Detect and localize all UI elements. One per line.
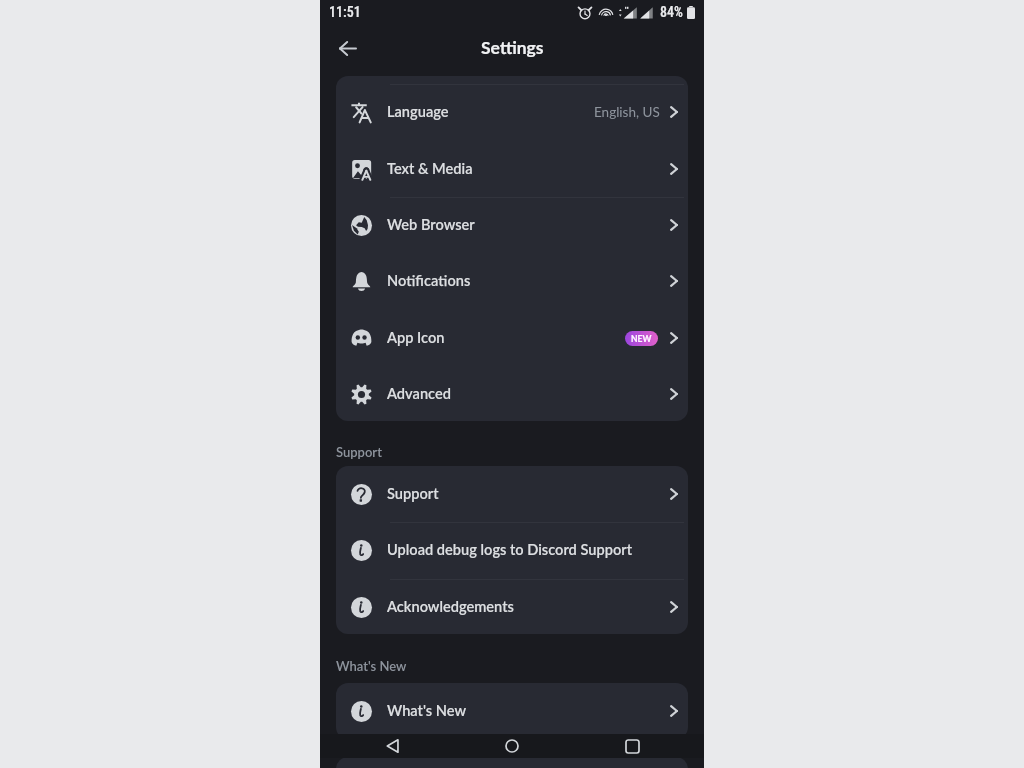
staticText: English, US — [594, 104, 660, 120]
button[interactable]: Back — [326, 27, 368, 69]
staticText: Advanced — [387, 385, 451, 403]
staticText: Support — [387, 485, 439, 503]
button[interactable]: Notifications — [336, 253, 688, 309]
button[interactable]: What's New — [336, 683, 688, 739]
button[interactable]: Home — [497, 734, 527, 758]
staticText: Notifications — [387, 272, 471, 290]
staticText: What's New — [336, 658, 407, 674]
staticText: What's New — [387, 702, 467, 720]
staticText: Acknowledgements — [387, 598, 514, 616]
staticText: Support — [336, 444, 382, 460]
staticText: Language — [387, 103, 449, 121]
button[interactable]: Recent apps — [617, 734, 647, 758]
staticText: App Icon — [387, 329, 445, 347]
staticText: Web Browser — [387, 216, 475, 234]
button[interactable]: Acknowledgements — [336, 579, 688, 634]
button[interactable]: Back — [377, 734, 407, 758]
button[interactable]: Language — [336, 84, 688, 140]
button[interactable]: App Icon — [336, 310, 688, 366]
staticText: Text & Media — [387, 160, 473, 178]
button[interactable]: Text & Media — [336, 141, 688, 197]
button[interactable]: Upload debug logs to Discord Support — [336, 522, 688, 578]
staticText: 84% — [660, 4, 683, 20]
button[interactable]: Support — [336, 466, 688, 522]
button[interactable]: Web Browser — [336, 197, 688, 253]
staticText: Settings — [481, 37, 544, 58]
button[interactable]: Advanced — [336, 366, 688, 421]
staticText: NEW — [631, 334, 652, 344]
staticText: Upload debug logs to Discord Support — [387, 541, 632, 559]
staticText: 11:51 — [329, 4, 361, 20]
